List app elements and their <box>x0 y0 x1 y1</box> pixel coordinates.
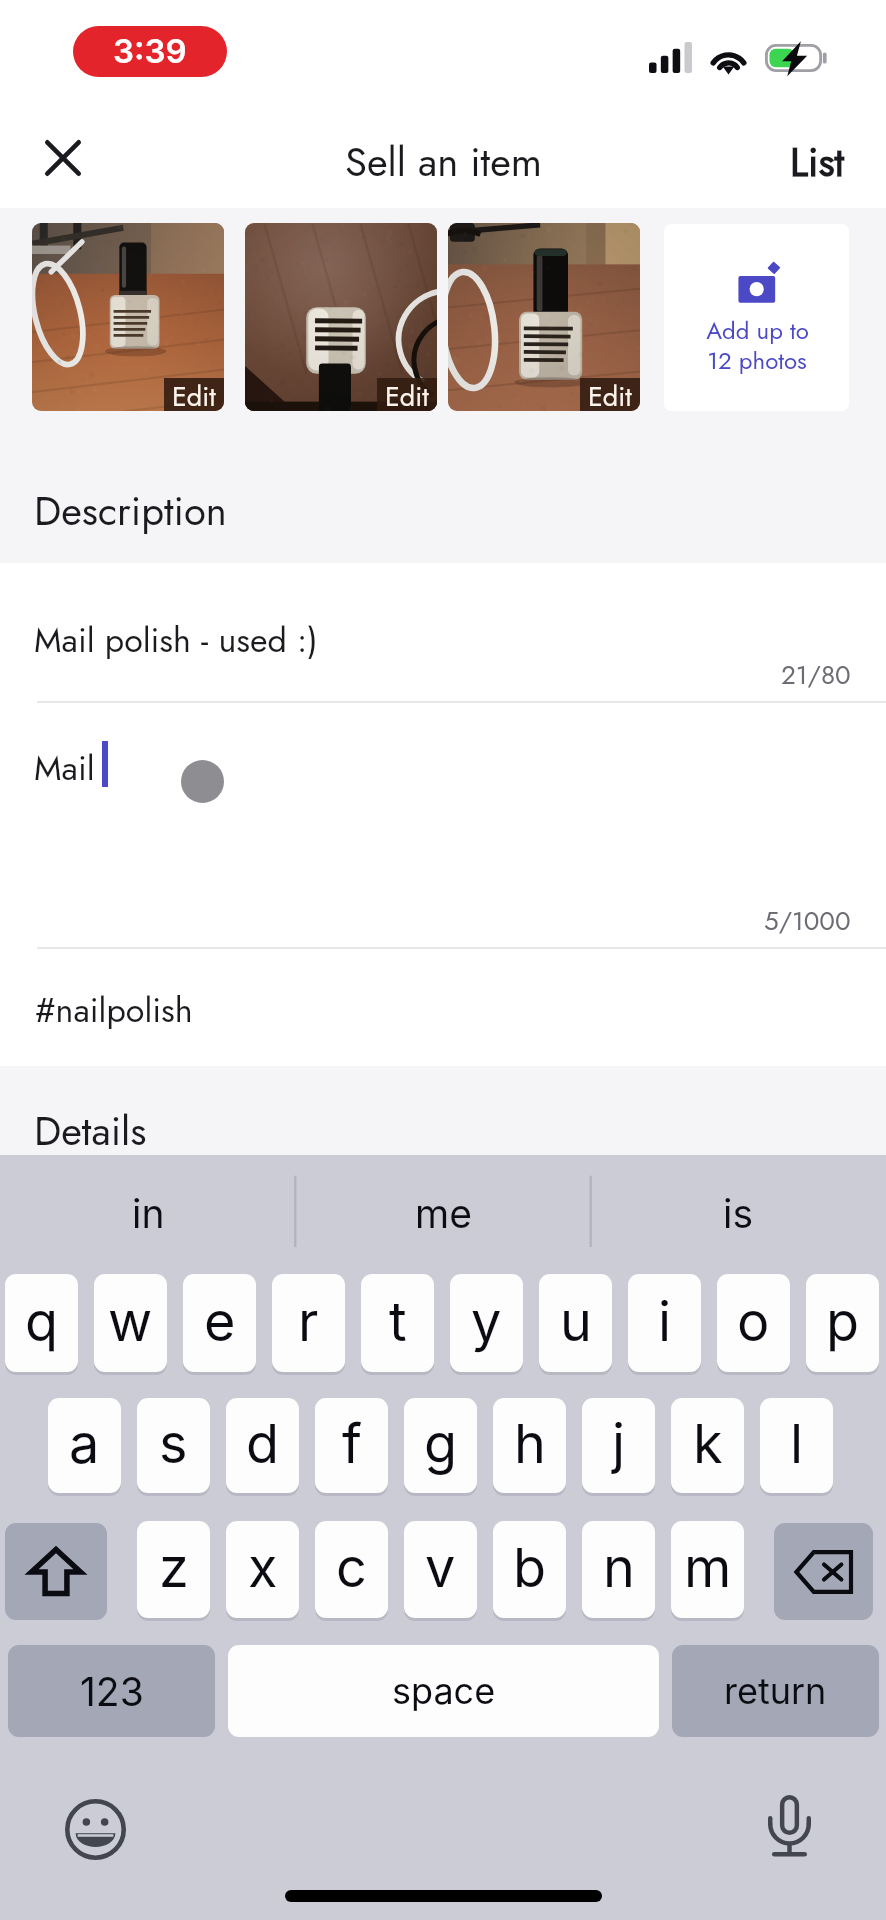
button[interactable]: Backspace <box>774 1523 873 1620</box>
staticText: Edit <box>172 377 216 410</box>
staticText: #nailpolish <box>35 986 193 1035</box>
staticText: m <box>684 1535 732 1600</box>
staticText: g <box>424 1411 458 1476</box>
button[interactable]: b <box>493 1521 566 1618</box>
staticText: d <box>246 1411 280 1476</box>
button[interactable]: z <box>137 1521 210 1618</box>
staticText: 5/1000 <box>764 902 851 940</box>
button[interactable]: o <box>717 1274 790 1372</box>
staticText: Edit <box>385 377 429 410</box>
button[interactable]: s <box>137 1398 210 1493</box>
button[interactable]: l <box>760 1398 833 1493</box>
button[interactable]: Edit <box>164 378 224 411</box>
button[interactable]: a <box>48 1398 121 1493</box>
button[interactable]: space <box>228 1645 659 1737</box>
staticText: Description <box>34 482 227 540</box>
button[interactable]: i <box>628 1274 701 1372</box>
staticText: me <box>415 1190 472 1237</box>
button[interactable]: Edit <box>448 223 640 411</box>
staticText: c <box>336 1535 367 1600</box>
button[interactable]: r <box>272 1274 345 1372</box>
staticText: Sell an item <box>345 133 542 191</box>
staticText: Edit <box>588 377 632 410</box>
button[interactable]: g <box>404 1398 477 1493</box>
button[interactable]: f <box>315 1398 388 1493</box>
button[interactable]: List <box>768 118 875 206</box>
staticText: n <box>603 1535 635 1600</box>
button[interactable]: is <box>591 1155 886 1270</box>
staticText: v <box>425 1535 456 1600</box>
button[interactable]: Close <box>18 113 107 202</box>
staticText: r <box>298 1289 319 1354</box>
staticText: o <box>737 1289 770 1354</box>
button[interactable]: 123 <box>8 1645 215 1737</box>
button[interactable]: 3:39 <box>73 26 227 77</box>
button[interactable]: return <box>672 1645 879 1737</box>
button[interactable]: Emoji keyboard <box>55 1789 136 1870</box>
button[interactable]: k <box>671 1398 744 1493</box>
button[interactable]: e <box>183 1274 256 1372</box>
staticText: return <box>724 1669 827 1713</box>
staticText: 123 <box>80 1668 144 1715</box>
staticText: f <box>342 1411 362 1476</box>
staticText: w <box>108 1289 153 1354</box>
staticText: Mail <box>34 744 95 793</box>
staticText: t <box>389 1289 407 1354</box>
staticText: is <box>723 1190 754 1237</box>
button[interactable]: c <box>315 1521 388 1618</box>
button[interactable]: Add up to <box>664 224 849 411</box>
staticText: List <box>790 133 845 191</box>
staticText: Add up to <box>706 313 809 348</box>
button[interactable]: d <box>226 1398 299 1493</box>
staticText: y <box>471 1289 502 1354</box>
button[interactable]: Shift <box>5 1523 107 1620</box>
button[interactable]: me <box>296 1155 591 1270</box>
button[interactable]: m <box>671 1521 744 1618</box>
staticText: 12 photos <box>707 343 807 378</box>
button[interactable]: j <box>582 1398 655 1493</box>
staticText: u <box>560 1289 592 1354</box>
staticText: Details <box>34 1102 147 1160</box>
staticText: e <box>204 1289 236 1354</box>
button[interactable]: in <box>0 1155 296 1270</box>
staticText: z <box>159 1535 189 1600</box>
staticText: p <box>826 1289 860 1354</box>
button[interactable]: q <box>5 1274 78 1372</box>
staticText: 3:39 <box>113 31 187 71</box>
button[interactable]: h <box>493 1398 566 1493</box>
button[interactable]: t <box>361 1274 434 1372</box>
button[interactable]: Edit <box>32 223 224 411</box>
staticText: j <box>612 1411 626 1476</box>
staticText: space <box>392 1669 496 1713</box>
button[interactable]: p <box>806 1274 879 1372</box>
button[interactable]: v <box>404 1521 477 1618</box>
button[interactable]: y <box>450 1274 523 1372</box>
button[interactable]: n <box>582 1521 655 1618</box>
button[interactable]: w <box>94 1274 167 1372</box>
staticText: Mail polish - used :) <box>34 616 318 665</box>
staticText: q <box>25 1289 59 1354</box>
staticText: in <box>132 1190 165 1237</box>
staticText: s <box>159 1411 188 1476</box>
staticText: k <box>693 1411 723 1476</box>
button[interactable]: Edit <box>580 378 640 411</box>
staticText: h <box>514 1411 546 1476</box>
staticText: x <box>248 1535 278 1600</box>
staticText: l <box>790 1411 804 1476</box>
button[interactable]: Edit <box>245 223 437 411</box>
staticText: a <box>69 1411 100 1476</box>
button[interactable]: x <box>226 1521 299 1618</box>
button[interactable]: Dictation <box>758 1785 821 1867</box>
button[interactable]: Edit <box>377 378 437 411</box>
button[interactable]: u <box>539 1274 612 1372</box>
staticText: b <box>513 1535 547 1600</box>
staticText: i <box>658 1289 672 1354</box>
staticText: 21/80 <box>781 656 851 694</box>
